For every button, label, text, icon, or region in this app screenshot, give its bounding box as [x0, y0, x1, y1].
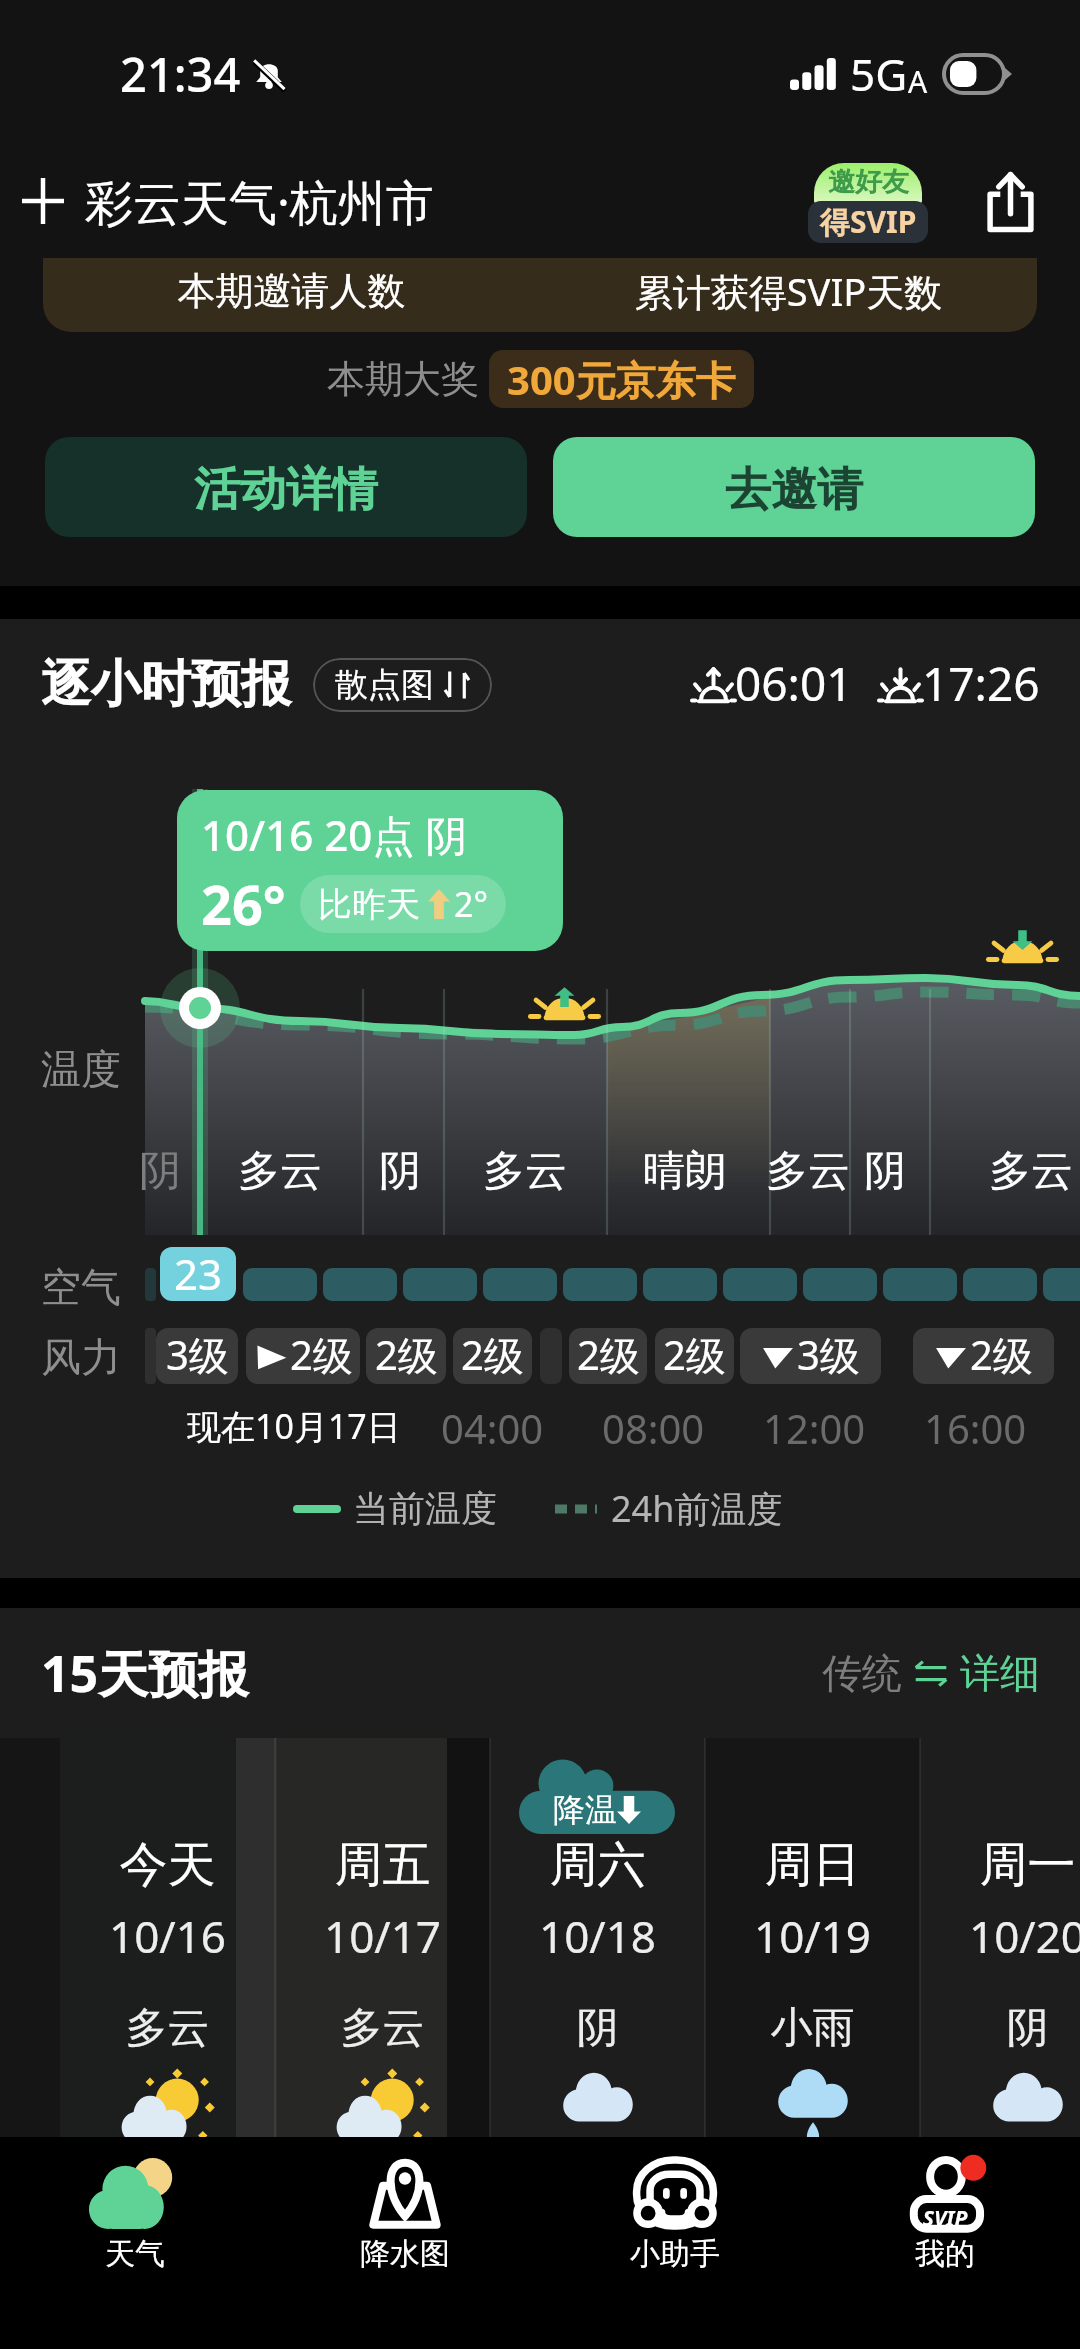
staticText: 阴	[920, 2002, 1080, 2055]
button[interactable]: 天气	[0, 2137, 270, 2349]
button[interactable]: 2级	[246, 1328, 360, 1384]
staticText: 26°	[201, 867, 286, 941]
staticText: 2级	[290, 1328, 353, 1382]
staticText: 21:34	[120, 42, 241, 106]
staticText: 空气	[41, 1262, 121, 1312]
staticText: 10/16	[60, 1906, 275, 1966]
staticText: 多云	[989, 1145, 1073, 1198]
staticText: 降水图	[270, 2235, 540, 2273]
staticText: 降温	[553, 1790, 617, 1830]
button[interactable]: 周五	[275, 1738, 490, 2149]
staticText: 17:26	[922, 652, 1040, 715]
staticText: 多云	[238, 1145, 322, 1198]
button[interactable]: 本期邀请人数	[43, 258, 1037, 332]
staticText: 多云	[483, 1145, 567, 1198]
staticText: A	[908, 61, 928, 102]
staticText: 彩云天气·杭州市	[85, 169, 434, 235]
button[interactable]: 周日	[705, 1738, 920, 2149]
staticText: 阴	[379, 1145, 421, 1198]
staticText: 5G	[850, 44, 908, 104]
button[interactable]: 散点图	[313, 658, 492, 712]
staticText: 3级	[797, 1328, 860, 1382]
button[interactable]: 传统	[822, 1648, 902, 1698]
staticText: 比昨天	[318, 883, 420, 926]
staticText: 04:00	[441, 1401, 544, 1455]
button[interactable]: 降水图	[270, 2137, 540, 2349]
staticText: 去邀请	[725, 461, 863, 519]
staticText: 阴	[139, 1145, 181, 1198]
button[interactable]: 周六	[490, 1738, 705, 2149]
button[interactable]: 去邀请	[553, 437, 1035, 537]
button[interactable]: Add city	[13, 171, 73, 231]
staticText: 逐小时预报	[41, 653, 291, 716]
button[interactable]: 今天	[60, 1738, 275, 2149]
staticText: 2级	[663, 1328, 726, 1382]
button[interactable]: 2级	[913, 1328, 1054, 1384]
staticText: 10/18	[490, 1906, 705, 1966]
button[interactable]: 23	[160, 1247, 236, 1301]
staticText: 08:00	[602, 1401, 705, 1455]
staticText: 10/19	[705, 1906, 920, 1966]
button[interactable]: 小助手	[540, 2137, 810, 2349]
staticText: 邀好友	[828, 165, 909, 199]
staticText: 2级	[461, 1328, 524, 1382]
staticText: 多云	[275, 2002, 490, 2055]
staticText: 16:00	[924, 1401, 1027, 1455]
staticText: 当前温度	[353, 1486, 497, 1531]
staticText: 2级	[577, 1328, 640, 1382]
staticText: 10/16 20点 阴	[201, 806, 468, 863]
staticText: 10/17	[275, 1906, 490, 1966]
staticText: 06:01	[735, 652, 853, 715]
staticText: 阴	[490, 2002, 705, 2055]
staticText: 周五	[275, 1835, 490, 1895]
staticText: 周一	[920, 1835, 1080, 1895]
button[interactable]: 3级	[156, 1328, 238, 1384]
staticText: 12:00	[763, 1401, 866, 1455]
staticText: 2级	[375, 1328, 438, 1382]
button[interactable]: 详细	[960, 1648, 1040, 1698]
staticText: SVIP	[921, 2204, 969, 2233]
button[interactable]: 2级	[569, 1328, 647, 1384]
staticText: 我的	[810, 2235, 1080, 2273]
staticText: 本期邀请人数	[43, 267, 540, 315]
button[interactable]: 2级	[366, 1328, 446, 1384]
staticText: 2°	[454, 881, 488, 927]
button[interactable]: 活动详情	[45, 437, 527, 537]
staticText: 现在10月17日	[187, 1403, 401, 1449]
staticText: 天气	[0, 2235, 270, 2273]
staticText: 活动详情	[194, 461, 378, 519]
staticText: 3级	[166, 1328, 229, 1382]
staticText: 多云	[60, 2002, 275, 2055]
staticText: 传统	[822, 1648, 902, 1698]
staticText: 10/20	[920, 1906, 1080, 1966]
button[interactable]: 周一	[920, 1738, 1080, 2149]
staticText: 15天预报	[41, 1639, 249, 1707]
button[interactable]: 10/16 20点 阴	[177, 790, 563, 951]
button[interactable]: 2级	[655, 1328, 734, 1384]
staticText: 风力	[41, 1332, 121, 1382]
staticText: 多云	[766, 1145, 850, 1198]
staticText: 23	[174, 1247, 223, 1299]
staticText: 300元京东卡	[507, 352, 736, 407]
staticText: 今天	[60, 1835, 275, 1895]
button[interactable]: Share	[966, 157, 1054, 245]
staticText: 24h前温度	[611, 1484, 783, 1533]
button[interactable]: SVIP	[810, 2137, 1080, 2349]
staticText: 累计获得SVIP天数	[540, 265, 1037, 317]
staticText: 本期大奖	[327, 355, 479, 403]
staticText: 得SVIP	[820, 201, 917, 242]
staticText: 周日	[705, 1835, 920, 1895]
button[interactable]: 邀好友	[808, 156, 936, 246]
staticText: 小雨	[705, 2002, 920, 2055]
staticText: 温度	[41, 1044, 121, 1094]
staticText: 2级	[970, 1328, 1033, 1382]
staticText: 小助手	[540, 2235, 810, 2273]
staticText: 详细	[960, 1648, 1040, 1698]
staticText: 阴	[864, 1145, 906, 1198]
staticText: 散点图	[335, 664, 434, 706]
staticText: 周六	[490, 1835, 705, 1895]
button[interactable]: 3级	[740, 1328, 881, 1384]
button[interactable]: 2级	[453, 1328, 532, 1384]
staticText: 晴朗	[643, 1145, 727, 1198]
